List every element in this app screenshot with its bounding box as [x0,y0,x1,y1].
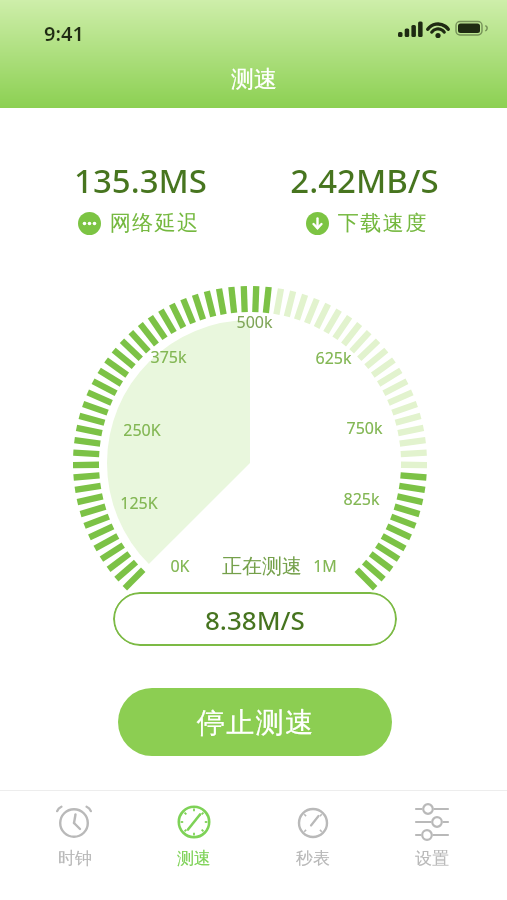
staticText: 8.38M/S [205,602,305,637]
staticText: 135.3MS [74,158,207,203]
staticText: 设置 [415,848,449,869]
staticText: 秒表 [296,848,330,869]
staticText: 625k [315,347,352,369]
staticText: 250K [123,419,161,441]
button[interactable]: 停止测速 [118,688,392,756]
staticText: 正在测速 [222,554,302,579]
staticText: 125K [120,492,158,514]
staticText: 1M [313,555,337,577]
button[interactable]: 测速 [134,791,253,900]
button[interactable]: 时钟 [16,791,134,900]
staticText: 375k [150,346,187,368]
button[interactable]: 8.38M/S [113,592,397,646]
staticText: 9:41 [44,20,84,47]
staticText: 500k [236,311,273,333]
staticText: 2.42MB/S [290,158,439,203]
staticText: 750k [346,417,383,439]
staticText: 825k [343,488,380,510]
staticText: 停止测速 [196,705,314,740]
staticText: 下载速度 [337,210,427,236]
staticText: 测速 [177,848,211,869]
button[interactable]: 设置 [372,791,491,900]
staticText: 网络延迟 [109,210,199,236]
button[interactable]: 秒表 [253,791,372,900]
staticText: 时钟 [58,848,92,869]
staticText: 0K [170,555,190,577]
staticText: 测速 [231,65,277,94]
